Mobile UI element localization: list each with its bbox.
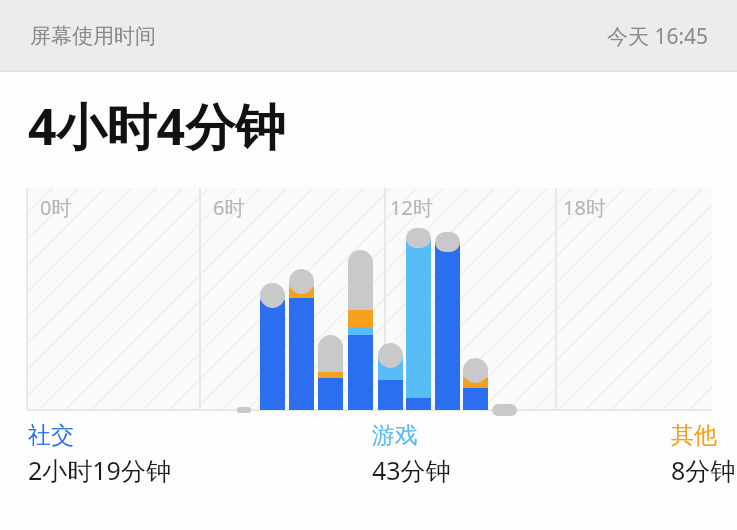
staticText: 游戏 [372,421,418,450]
button[interactable]: 社交 [28,421,177,487]
staticText: 4小时4分钟 [28,92,286,160]
staticText: 18时 [563,194,606,221]
button[interactable]: 游戏 [372,421,457,487]
button[interactable]: 0时 [0,180,737,415]
staticText: 43分钟 [372,453,451,487]
staticText: 屏幕使用时间 [30,23,156,49]
staticText: 6时 [213,194,245,221]
staticText: 2小时19分钟 [28,453,171,487]
staticText: 社交 [28,421,74,450]
staticText: 0时 [40,194,72,221]
staticText: 12时 [390,194,433,221]
button[interactable]: 屏幕使用时间 [0,0,737,72]
staticText: 8分钟 [671,453,736,487]
staticText: 其他 [671,421,717,450]
staticText: 今天 16:45 [607,22,709,51]
button[interactable]: 其他 [671,421,737,487]
